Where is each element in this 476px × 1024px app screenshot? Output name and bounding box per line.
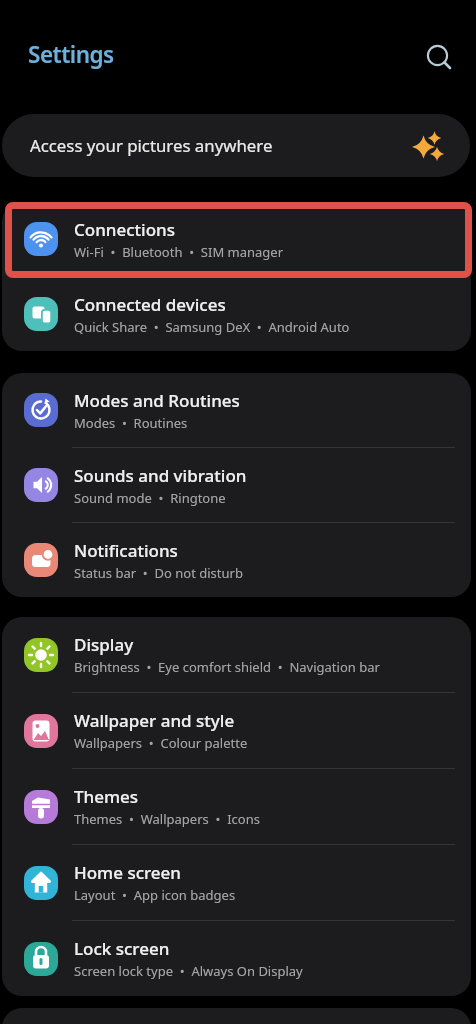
staticText: Home screen xyxy=(74,861,182,884)
button[interactable]: Home screen xyxy=(2,845,471,920)
staticText: Themes • Wallpapers • Icons xyxy=(74,810,260,828)
staticText: Connections xyxy=(74,218,176,241)
staticText: Quick Share • Samsung DeX • Android Auto xyxy=(74,318,350,336)
staticText: Brightness • Eye comfort shield • Naviga… xyxy=(74,658,380,676)
staticText: Wi-Fi • Bluetooth • SIM manager xyxy=(74,243,284,261)
button[interactable]: Wallpaper and style xyxy=(2,693,471,768)
staticText: Sounds and vibration xyxy=(74,464,247,487)
staticText: Modes • Routines xyxy=(74,414,188,432)
staticText: Display xyxy=(74,633,134,656)
staticText: Status bar • Do not disturb xyxy=(74,564,243,582)
staticText: Sound mode • Ringtone xyxy=(74,489,226,507)
staticText: Lock screen xyxy=(74,937,170,960)
button[interactable]: Modes and Routines xyxy=(2,373,471,447)
staticText: Wallpaper and style xyxy=(74,709,235,732)
button[interactable]: Sounds and vibration xyxy=(2,448,471,522)
staticText: Screen lock type • Always On Display xyxy=(74,962,303,980)
button[interactable]: Connections xyxy=(2,202,471,276)
button[interactable]: Access your pictures anywhere xyxy=(2,114,470,177)
button[interactable]: Themes xyxy=(2,769,471,844)
staticText: Layout • App icon badges xyxy=(74,886,236,904)
staticText: Wallpapers • Colour palette xyxy=(74,734,248,752)
staticText: Access your pictures anywhere xyxy=(30,134,273,157)
button[interactable]: Notifications xyxy=(2,523,471,597)
button[interactable]: Lock screen xyxy=(2,921,471,996)
staticText: Connected devices xyxy=(74,293,226,316)
button[interactable]: Display xyxy=(2,617,471,692)
staticText: Notifications xyxy=(74,539,178,562)
staticText: Modes and Routines xyxy=(74,389,240,412)
button[interactable] xyxy=(419,37,457,75)
staticText: Themes xyxy=(74,785,139,808)
staticText: Settings xyxy=(28,39,114,70)
button[interactable]: Connected devices xyxy=(2,277,471,351)
